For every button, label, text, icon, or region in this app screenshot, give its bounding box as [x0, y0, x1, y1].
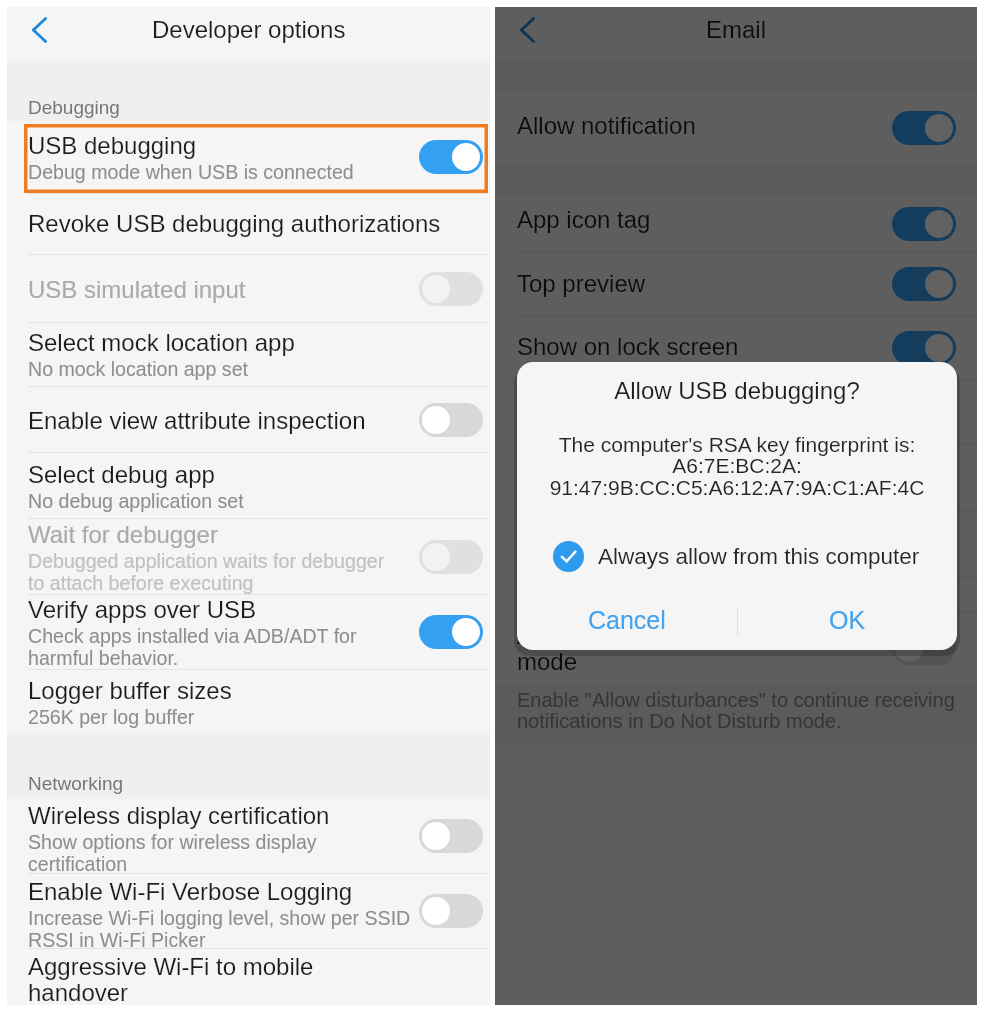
staticText: Top preview — [517, 270, 646, 297]
staticText: Pop-up preview — [517, 464, 684, 491]
staticText: Revoke USB debugging authorizations — [28, 210, 441, 237]
staticText: Wait for debugger — [28, 521, 218, 548]
staticText: Allow notification — [517, 112, 696, 139]
staticText: Enable "Allow disturbances" to continue … — [517, 689, 955, 732]
staticText: Verify apps over USB — [28, 596, 257, 623]
staticText: Debug mode when USB is connected — [28, 161, 354, 183]
button[interactable]: Toggle Wireless display certification — [419, 819, 483, 853]
staticText: No mock location app set — [28, 358, 248, 380]
button[interactable]: Pop-up preview — [495, 444, 977, 510]
button[interactable]: Toggle Verify apps over USB — [419, 615, 483, 649]
button[interactable]: Toggle Wait for debugger — [419, 540, 483, 574]
staticText: Enable Wi-Fi Verbose Logging — [28, 878, 353, 905]
button[interactable]: Toggle Enable view attribute inspection — [419, 403, 483, 437]
button[interactable]: Allow notification — [495, 92, 977, 164]
staticText: Check apps installed via ADB/ADT for har… — [28, 625, 357, 669]
button[interactable]: Toggle Allow notification — [892, 111, 956, 145]
button[interactable]: Cancel — [517, 594, 737, 646]
staticText: OK — [829, 606, 866, 634]
staticText: Select mock location app — [28, 329, 295, 356]
staticText: Default sound — [517, 548, 638, 570]
staticText: Show on lock screen — [517, 333, 739, 360]
staticText: USB simulated input — [28, 276, 246, 303]
staticText: Enable view attribute inspection — [28, 407, 366, 434]
button[interactable]: Logger buffer sizes — [7, 670, 490, 733]
staticText: Developer options — [152, 16, 346, 43]
button[interactable]: Toggle Show on lock screen — [892, 331, 956, 365]
button[interactable]: Revoke USB debugging authorizations — [7, 194, 490, 254]
staticText: Show options for wireless display certif… — [28, 831, 317, 875]
button[interactable]: Allow notification in Do Not Disturb mod… — [495, 612, 977, 684]
staticText: Cancel — [588, 606, 666, 634]
button[interactable]: Wait for debugger — [7, 519, 490, 594]
staticText: Increase Wi-Fi logging level, show per S… — [28, 907, 411, 951]
button[interactable]: Wireless display certification — [7, 799, 490, 873]
staticText: App icon tag — [517, 206, 651, 233]
button[interactable]: OK — [737, 594, 957, 646]
button[interactable]: Top preview — [495, 253, 977, 315]
button[interactable]: Enable view attribute inspection — [7, 387, 490, 452]
staticText: Wireless display certification — [28, 802, 330, 829]
button[interactable]: Toggle Allow notification in Do Not Dist… — [892, 631, 956, 665]
staticText: Debugging — [28, 97, 120, 118]
button[interactable]: App icon tag — [495, 196, 977, 252]
staticText: USB debugging — [28, 132, 197, 159]
staticText: Select debug app — [28, 461, 215, 488]
button[interactable]: Sound — [495, 511, 977, 577]
button[interactable]: Select debug app — [7, 453, 490, 518]
button[interactable]: Toggle App icon tag — [892, 207, 956, 241]
staticText: Sound — [517, 519, 587, 546]
button[interactable]: Vibrate — [495, 578, 977, 611]
button[interactable]: Toggle Top preview — [892, 267, 956, 301]
staticText: Aggressive Wi-Fi to mobile handover — [28, 953, 314, 1006]
button[interactable]: Allow disturbances — [495, 380, 977, 443]
button[interactable]: Enable Wi-Fi Verbose Logging — [7, 874, 490, 948]
button[interactable]: Toggle USB debugging — [419, 140, 483, 174]
button[interactable]: Toggle USB simulated input — [419, 272, 483, 306]
staticText: Allow disturbances — [517, 398, 718, 425]
button[interactable]: Back — [21, 12, 57, 48]
button[interactable]: USB debugging — [7, 121, 490, 193]
button[interactable]: Toggle Pop-up preview — [892, 460, 956, 494]
button[interactable]: Select mock location app — [7, 323, 490, 386]
staticText: 256K per log buffer — [28, 706, 195, 728]
button[interactable]: USB simulated input — [7, 255, 490, 322]
button[interactable]: Back — [509, 12, 545, 48]
staticText: Debugged application waits for debugger … — [28, 550, 385, 594]
staticText: Always allow from this computer — [598, 544, 920, 569]
button[interactable]: Toggle Enable Wi-Fi Verbose Logging — [419, 894, 483, 928]
button[interactable]: Show on lock screen — [495, 316, 977, 379]
staticText: Logger buffer sizes — [28, 677, 232, 704]
button[interactable]: Verify apps over USB — [7, 595, 490, 669]
staticText: Networking — [28, 773, 124, 794]
staticText: The computer's RSA key fingerprint is: A… — [517, 433, 957, 500]
staticText: Allow notification in Do Not Disturb mod… — [517, 622, 886, 675]
staticText: Allow USB debugging? — [517, 377, 957, 404]
button[interactable]: Always allow from this computer — [517, 541, 957, 572]
staticText: Email — [706, 16, 767, 43]
button[interactable]: Aggressive Wi-Fi to mobile handover — [7, 949, 490, 1005]
staticText: No debug application set — [28, 490, 244, 512]
